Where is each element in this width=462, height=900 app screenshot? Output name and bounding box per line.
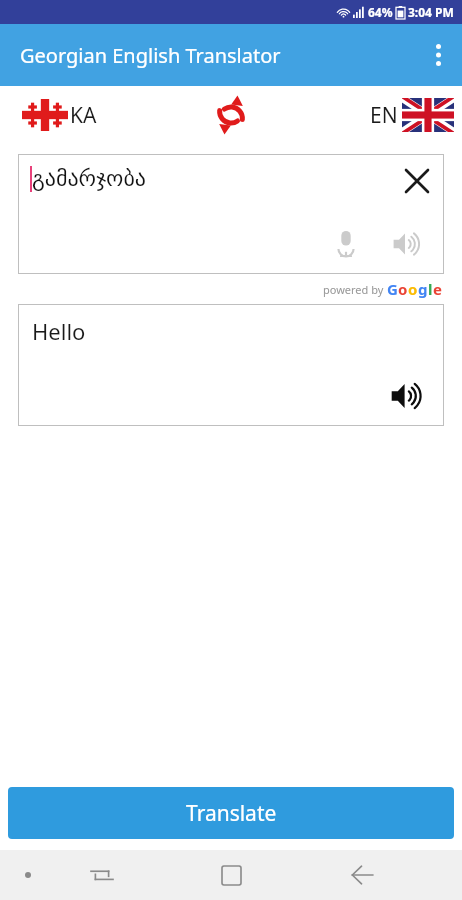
button[interactable]: Speak translation	[386, 374, 430, 418]
button[interactable]: Translate	[8, 787, 454, 839]
button[interactable]: Recent apps	[209, 853, 253, 897]
staticText: G	[387, 279, 398, 299]
button[interactable]: Back	[340, 853, 384, 897]
button[interactable]: Swap languages	[202, 86, 260, 144]
button[interactable]: Speak source text	[386, 222, 430, 266]
staticText: EN	[370, 101, 398, 130]
button[interactable]: EN	[260, 98, 462, 132]
staticText: l	[428, 279, 433, 299]
staticText: g	[418, 279, 428, 299]
staticText: 64%	[368, 4, 393, 20]
staticText: Hello	[32, 316, 86, 346]
button[interactable]: KA	[0, 99, 202, 131]
staticText: Georgian English Translator	[20, 42, 281, 69]
button[interactable]: Hello	[18, 304, 444, 426]
staticText: e	[433, 279, 442, 299]
staticText: Translate	[186, 799, 277, 828]
staticText: გამარჯობა	[32, 166, 146, 192]
staticText: o	[408, 279, 418, 299]
button[interactable]: Voice input	[324, 222, 368, 266]
button[interactable]: More options	[414, 31, 462, 79]
staticText: KA	[70, 101, 97, 130]
button[interactable]: Menu	[10, 857, 46, 893]
staticText: 3:04 PM	[408, 4, 454, 20]
button[interactable]: Clear text	[396, 160, 438, 202]
button[interactable]: გამარჯობა	[18, 154, 444, 274]
button[interactable]: Switch apps	[82, 855, 122, 895]
staticText: powered by	[323, 282, 387, 297]
staticText: o	[398, 279, 408, 299]
